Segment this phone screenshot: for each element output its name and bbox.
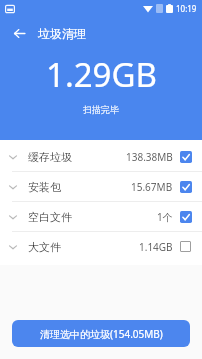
staticText: 1个 [157, 210, 173, 224]
button[interactable]: 缓存垃圾 [0, 142, 202, 171]
button[interactable]: 清理选中的垃圾(154.05MB) [12, 320, 190, 347]
staticText: 1.14GB [139, 240, 173, 254]
staticText: 清理选中的垃圾(154.05MB) [40, 327, 163, 341]
button[interactable]: Selected [179, 180, 192, 193]
button[interactable]: Back [6, 20, 32, 46]
staticText: 扫描完毕 [83, 104, 119, 115]
staticText: 10:19 [176, 3, 197, 14]
button[interactable]: 空白文件 [0, 202, 202, 231]
button[interactable]: 安装包 [0, 172, 202, 201]
staticText: 缓存垃圾 [28, 150, 72, 164]
staticText: 垃圾清理 [38, 26, 86, 41]
button[interactable]: Selected [179, 210, 192, 223]
staticText: 15.67MB [131, 180, 173, 194]
staticText: 1.29GB [46, 52, 157, 97]
staticText: 空白文件 [28, 210, 72, 224]
staticText: 安装包 [28, 180, 61, 194]
button[interactable]: Not selected [179, 240, 192, 253]
button[interactable]: 大文件 [0, 232, 202, 261]
button[interactable]: Selected [179, 150, 192, 163]
staticText: 138.38MB [126, 150, 173, 164]
staticText: 大文件 [28, 240, 61, 254]
